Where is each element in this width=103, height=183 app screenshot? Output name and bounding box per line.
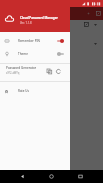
button[interactable]: Remember PIN: [0, 34, 70, 47]
button[interactable]: [57, 39, 64, 43]
button[interactable]: Generate new password: [53, 66, 63, 76]
button[interactable]: Theme: [0, 47, 70, 60]
staticText: Remember PIN: [18, 39, 57, 43]
button[interactable]: Logout: [94, 9, 103, 18]
button[interactable]: Add: [84, 9, 93, 18]
staticText: aY?2-aWYq: [6, 71, 20, 75]
button[interactable]: Recent apps: [74, 170, 87, 183]
button[interactable]: Home: [45, 170, 58, 183]
button[interactable]: Rate Us: [0, 82, 70, 100]
button[interactable]: [57, 52, 64, 56]
staticText: Theme: [18, 52, 57, 56]
staticText: Rate Us: [18, 89, 29, 93]
staticText: Password Generator: [6, 66, 37, 70]
button[interactable]: Copy password: [44, 66, 54, 76]
staticText: Ver. 1.1.8: [20, 21, 32, 25]
button[interactable]: Back: [16, 170, 29, 183]
staticText: Cloud Password Manager: [20, 16, 58, 20]
button[interactable]: Password Generator: [0, 64, 70, 81]
